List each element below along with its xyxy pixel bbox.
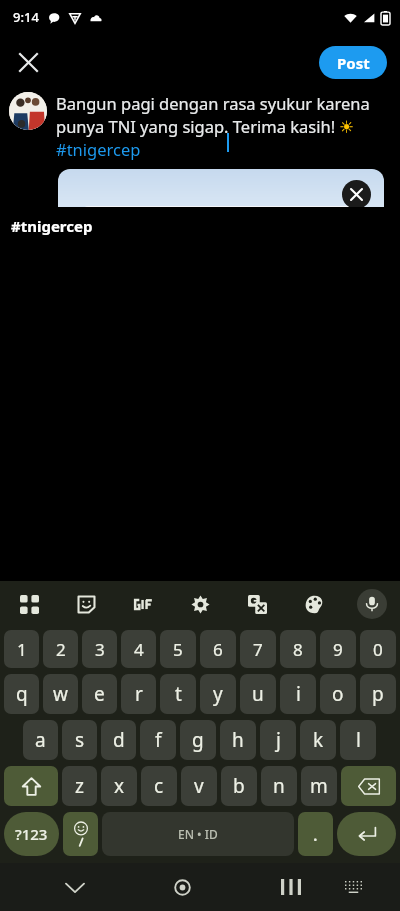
staticText: s	[75, 727, 85, 753]
button[interactable]: Close	[8, 42, 48, 82]
button[interactable]: 6	[200, 630, 236, 668]
button[interactable]: k	[300, 720, 336, 760]
button[interactable]: f	[140, 720, 176, 760]
button[interactable]: a	[23, 720, 58, 760]
button[interactable]: y	[200, 674, 236, 714]
button[interactable]: w	[43, 674, 78, 714]
button[interactable]: v	[181, 766, 217, 806]
staticText: Bangun pagi dengan rasa syukur karena pu…	[56, 92, 390, 161]
staticText: 8	[293, 638, 303, 661]
staticText: ?123	[15, 824, 48, 844]
button[interactable]: n	[261, 766, 297, 806]
button[interactable]: Recent apps	[267, 863, 314, 911]
button[interactable]: .	[298, 812, 333, 856]
button[interactable]: m	[301, 766, 337, 806]
button[interactable]: l	[340, 720, 376, 760]
button[interactable]: 2	[43, 630, 78, 668]
button[interactable]: 3	[82, 630, 117, 668]
button[interactable]: Translate	[229, 581, 286, 627]
staticText: Post	[337, 53, 370, 73]
staticText: f	[155, 727, 162, 753]
staticText: h	[232, 727, 244, 753]
button[interactable]: 0	[360, 630, 396, 668]
staticText: g	[192, 727, 204, 753]
button[interactable]: #tnigercep	[0, 207, 400, 245]
staticText: v	[194, 773, 204, 799]
button[interactable]: Voice input	[343, 581, 400, 627]
button[interactable]: 4	[121, 630, 156, 668]
staticText: 5	[173, 638, 183, 661]
staticText: j	[276, 727, 281, 753]
button[interactable]: h	[220, 720, 256, 760]
button[interactable]: ?123	[4, 812, 59, 856]
button[interactable]: Clipboard	[0, 581, 58, 627]
staticText: a	[35, 727, 46, 753]
button[interactable]: u	[240, 674, 276, 714]
button[interactable]: c	[141, 766, 177, 806]
staticText: k	[313, 727, 324, 753]
button[interactable]: 9	[320, 630, 356, 668]
staticText: u	[252, 681, 264, 707]
button[interactable]: d	[101, 720, 136, 760]
staticText: x	[114, 773, 125, 799]
button[interactable]: Home	[159, 863, 206, 911]
staticText: 3	[95, 638, 105, 661]
staticText: .	[313, 823, 318, 846]
staticText: 0	[373, 638, 383, 661]
staticText: t	[175, 681, 182, 707]
staticText: q	[16, 681, 28, 707]
button[interactable]: x	[101, 766, 137, 806]
button[interactable]: 8	[280, 630, 316, 668]
staticText: d	[113, 727, 125, 753]
button[interactable]: Attached image	[58, 169, 384, 207]
button[interactable]: Stickers	[58, 581, 115, 627]
staticText: n	[273, 773, 285, 799]
staticText: o	[332, 681, 344, 707]
staticText: l	[356, 727, 361, 753]
button[interactable]: b	[221, 766, 257, 806]
button[interactable]: t	[160, 674, 196, 714]
button[interactable]: Post	[319, 46, 387, 79]
staticText: m	[310, 773, 328, 799]
button[interactable]: o	[320, 674, 356, 714]
staticText: y	[213, 681, 223, 707]
staticText: 9:14	[13, 8, 39, 26]
staticText: e	[94, 681, 105, 707]
button[interactable]: Settings	[172, 581, 229, 627]
button[interactable]: e	[82, 674, 117, 714]
staticText: z	[75, 773, 84, 799]
button[interactable]: z	[62, 766, 97, 806]
staticText: i	[296, 681, 301, 707]
button[interactable]: j	[260, 720, 296, 760]
staticText: 4	[134, 638, 144, 661]
button[interactable]: Remove image	[342, 180, 371, 209]
button[interactable]: s	[62, 720, 97, 760]
button[interactable]: q	[4, 674, 39, 714]
staticText: 6	[213, 638, 223, 661]
staticText: #tnigercep	[11, 216, 93, 236]
staticText: 7	[253, 638, 263, 661]
button[interactable]: g	[180, 720, 216, 760]
staticText: 2	[56, 638, 66, 661]
button[interactable]: r	[121, 674, 156, 714]
button[interactable]: Enter	[337, 812, 396, 856]
button[interactable]: Hide keyboard	[51, 863, 98, 911]
button[interactable]: Profile photo	[9, 92, 47, 130]
button[interactable]: 1	[4, 630, 39, 668]
button[interactable]: Backspace	[341, 766, 396, 806]
button[interactable]: Shift	[4, 766, 58, 806]
button[interactable]: i	[280, 674, 316, 714]
button[interactable]: Emoji	[63, 812, 98, 856]
button[interactable]: Switch keyboard	[330, 863, 377, 911]
button[interactable]: 7	[240, 630, 276, 668]
button[interactable]: 5	[160, 630, 196, 668]
button[interactable]: Themes	[286, 581, 343, 627]
button[interactable]: GIF	[115, 581, 172, 627]
staticText: 1	[17, 638, 27, 661]
staticText: 9	[333, 638, 343, 661]
staticText: c	[154, 773, 164, 799]
button[interactable]: Space	[102, 812, 294, 856]
staticText: w	[53, 681, 68, 707]
staticText: b	[233, 773, 245, 799]
button[interactable]: p	[360, 674, 396, 714]
